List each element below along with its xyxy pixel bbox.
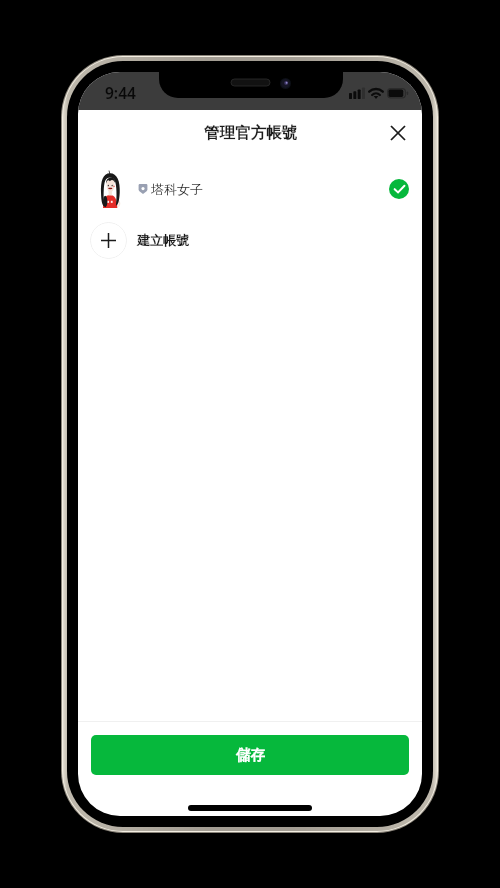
button[interactable]: 塔科女子 <box>78 166 422 212</box>
staticText: 9:44 <box>105 82 136 103</box>
staticText: 儲存 <box>236 746 265 764</box>
button[interactable]: 儲存 <box>91 735 409 775</box>
button[interactable]: 建立帳號 <box>78 217 422 263</box>
staticText: 塔科女子 <box>151 181 203 197</box>
button[interactable]: Close <box>380 115 416 151</box>
staticText: 管理官方帳號 <box>204 123 297 143</box>
staticText: 建立帳號 <box>137 232 189 248</box>
